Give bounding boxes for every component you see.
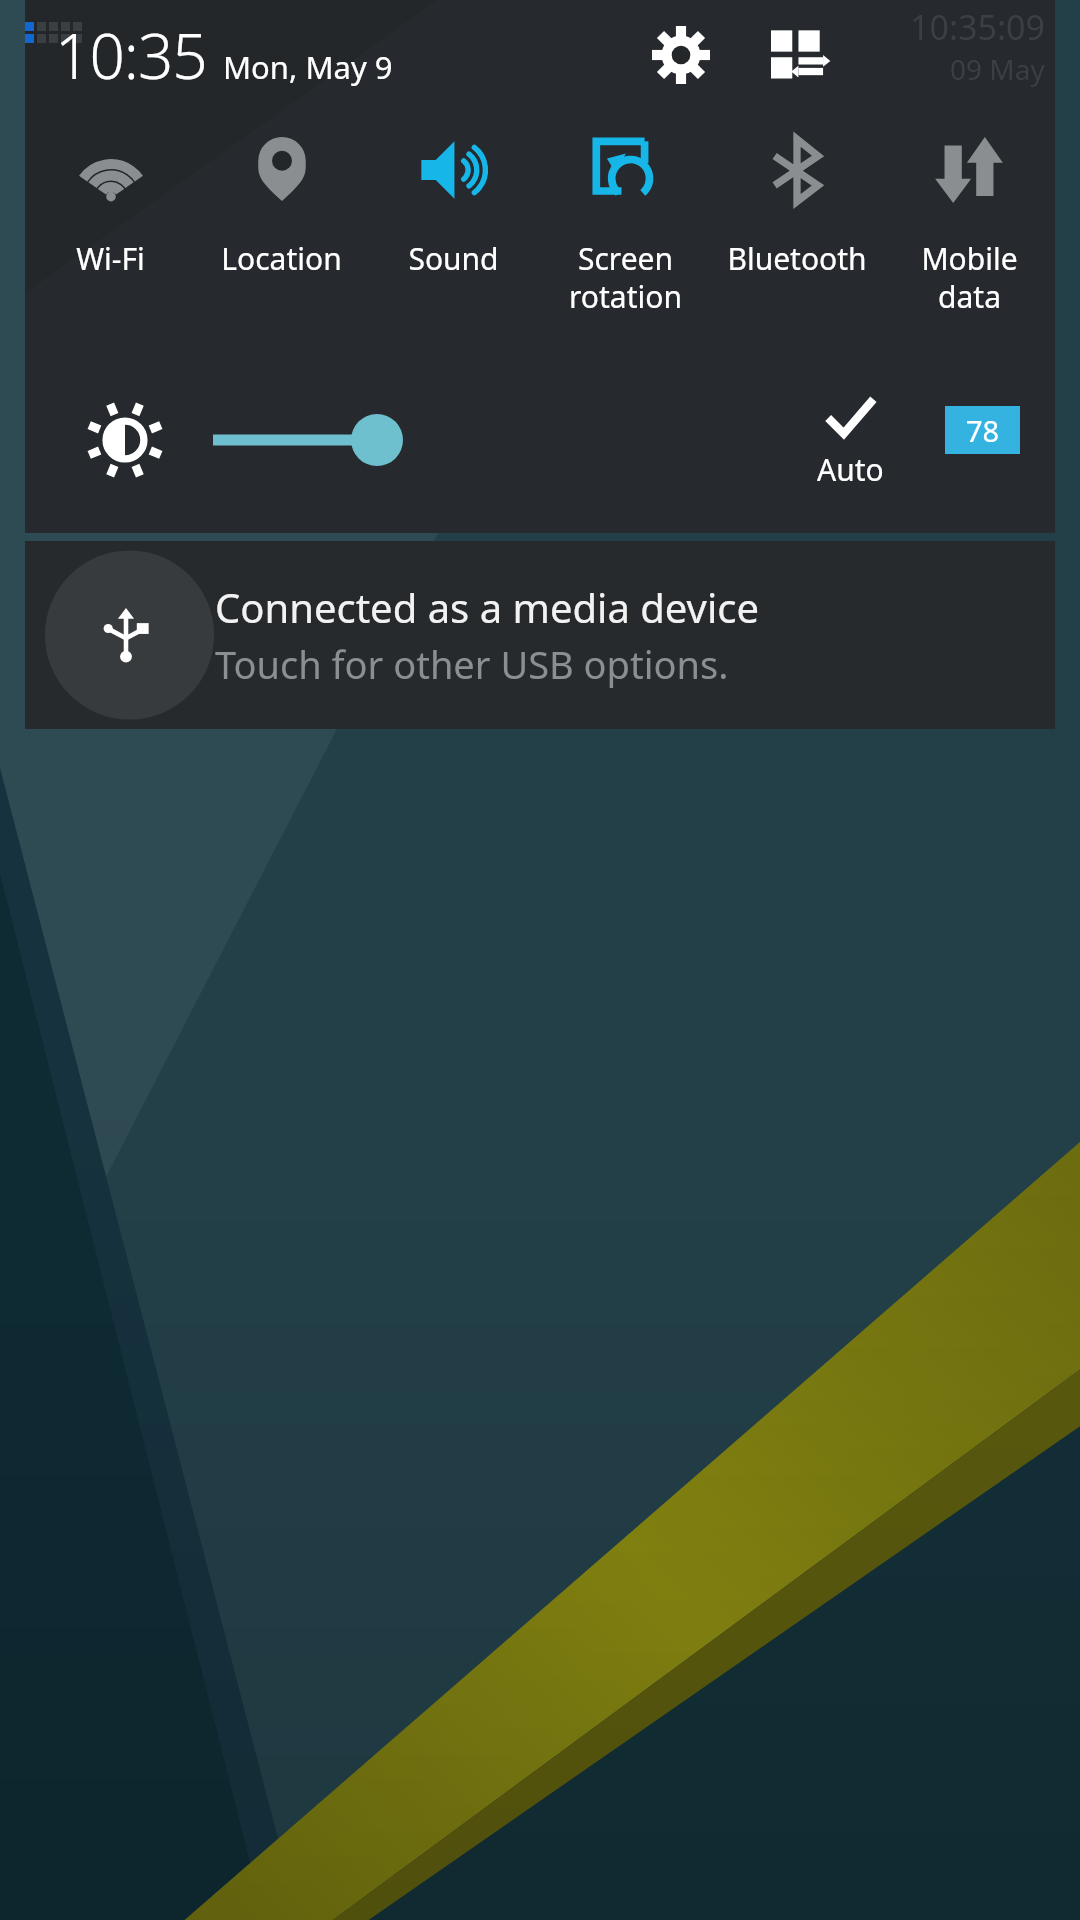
- button[interactable]: Bluetooth: [711, 110, 883, 360]
- staticText: 09 May: [950, 50, 1045, 88]
- staticText: Connected as a media device: [215, 580, 759, 634]
- staticText: Screen rotation: [569, 238, 682, 317]
- button[interactable]: Connected as a media device: [25, 541, 1055, 729]
- button[interactable]: Wi-Fi: [25, 110, 196, 360]
- staticText: Mon, May 9: [223, 46, 393, 88]
- button[interactable]: Location: [196, 110, 367, 360]
- staticText: Mobile data: [921, 238, 1018, 317]
- staticText: 10:35:09: [910, 4, 1045, 50]
- button[interactable]: Switch user: [757, 13, 841, 97]
- button[interactable]: Brightness: [77, 392, 173, 488]
- button[interactable]: Sound: [367, 110, 539, 360]
- staticText: Sound: [408, 238, 499, 279]
- staticText: Wi-Fi: [76, 238, 145, 279]
- button[interactable]: Auto: [785, 391, 915, 490]
- staticText: 10:35: [55, 13, 207, 97]
- button[interactable]: Screen rotation: [539, 110, 711, 360]
- staticText: Bluetooth: [727, 238, 867, 279]
- staticText: Touch for other USB options.: [215, 638, 729, 690]
- button[interactable]: Settings: [639, 13, 723, 97]
- staticText: 78: [966, 411, 1000, 450]
- button[interactable]: Brightness slider: [185, 395, 425, 485]
- staticText: Location: [221, 238, 342, 279]
- button[interactable]: 78: [945, 406, 1020, 454]
- button[interactable]: Mobile data: [883, 110, 1055, 360]
- staticText: Auto: [817, 449, 884, 490]
